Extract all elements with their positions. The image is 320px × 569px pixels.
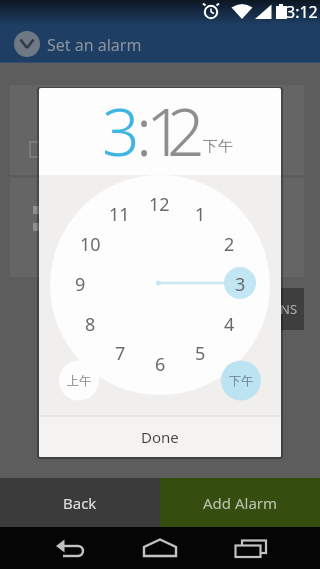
- staticText: 10: [80, 232, 101, 254]
- staticText: 11: [109, 202, 130, 224]
- button[interactable]: Back: [0, 478, 160, 527]
- button[interactable]: Add Alarm: [160, 478, 320, 527]
- button[interactable]: 12: [139, 192, 179, 214]
- button[interactable]: [230, 527, 278, 569]
- staticText: 3: [102, 88, 140, 175]
- staticText: 2: [167, 88, 205, 175]
- staticText: NS: [280, 300, 298, 318]
- button[interactable]: NS: [279, 288, 304, 330]
- button[interactable]: 5: [180, 341, 220, 363]
- staticText: 下午: [203, 137, 233, 156]
- button[interactable]: [136, 527, 184, 569]
- staticText: Add Alarm: [203, 493, 278, 513]
- staticText: 2: [224, 232, 235, 254]
- staticText: 3: [235, 272, 246, 294]
- button[interactable]: 6: [140, 352, 180, 374]
- button[interactable]: Done: [39, 417, 281, 457]
- staticText: 4: [224, 312, 235, 334]
- staticText: 1: [195, 202, 206, 224]
- button[interactable]: 10: [70, 232, 110, 254]
- button[interactable]: 9: [60, 272, 100, 294]
- staticText: 8: [85, 312, 96, 334]
- button[interactable]: 3: [220, 272, 260, 294]
- staticText: 6: [155, 352, 166, 374]
- staticText: 下午: [229, 373, 253, 388]
- staticText: 7: [115, 341, 126, 363]
- button[interactable]: 4: [209, 312, 249, 334]
- button[interactable]: 1: [180, 202, 220, 224]
- staticText: 9: [75, 272, 86, 294]
- staticText: Done: [141, 427, 179, 447]
- staticText: Set an alarm: [47, 34, 142, 56]
- button[interactable]: 8: [70, 312, 110, 334]
- button[interactable]: 上午: [59, 360, 99, 400]
- button[interactable]: 2: [209, 232, 249, 254]
- button[interactable]: 11: [99, 202, 139, 224]
- staticText: 12: [149, 192, 170, 214]
- staticText: 3:12: [286, 1, 318, 23]
- staticText: 1: [146, 88, 184, 175]
- button[interactable]: [42, 527, 90, 569]
- staticText: Back: [63, 493, 97, 513]
- button[interactable]: 下午: [221, 360, 261, 400]
- staticText: 上午: [67, 373, 91, 388]
- staticText: :: [136, 88, 153, 175]
- button[interactable]: Set an alarm: [0, 25, 320, 63]
- button[interactable]: 7: [100, 341, 140, 363]
- staticText: 5: [195, 341, 206, 363]
